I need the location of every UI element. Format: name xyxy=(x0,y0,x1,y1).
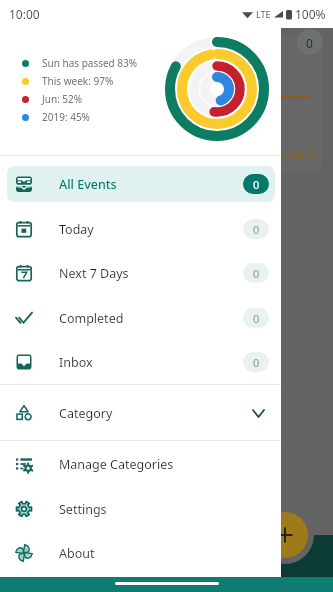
other: About xyxy=(16,545,32,561)
button[interactable]: Manage Categories xyxy=(0,442,281,486)
staticText: Manage Categories xyxy=(59,456,174,473)
other: Next 7 Days xyxy=(16,265,32,281)
other: All Events xyxy=(16,176,32,192)
staticText: 2019: 45% xyxy=(42,110,90,124)
staticText: Category xyxy=(59,405,113,422)
button[interactable]: About xyxy=(0,531,281,575)
staticText: About xyxy=(59,545,95,562)
button[interactable]: Completed xyxy=(7,300,275,336)
staticText: Settings xyxy=(59,501,107,518)
button[interactable]: Inbox xyxy=(7,344,275,380)
staticText: Next 7 Days xyxy=(59,265,129,282)
other: Completed xyxy=(16,310,32,326)
staticText: Completed xyxy=(59,310,124,327)
staticText: 0 xyxy=(306,35,313,51)
staticText: 10:00 xyxy=(9,6,40,22)
staticText: This week: 97% xyxy=(42,74,114,88)
other: Category xyxy=(16,405,32,421)
staticText: 0 xyxy=(253,355,260,370)
other: Settings xyxy=(16,501,32,517)
other: Manage Categories xyxy=(16,456,32,472)
staticText: 100% xyxy=(295,6,326,22)
staticText: Jun: 52% xyxy=(42,92,83,106)
button[interactable]: Today xyxy=(7,211,275,247)
button[interactable]: All Events xyxy=(7,166,275,202)
staticText: LTE xyxy=(256,8,271,20)
other: Inbox xyxy=(16,354,32,370)
staticText: 0 xyxy=(253,177,260,192)
staticText: Today xyxy=(59,221,94,238)
button[interactable]: Category xyxy=(0,391,281,435)
staticText: 0 xyxy=(253,311,260,326)
staticText: EVENTS xyxy=(272,147,316,163)
other: Today xyxy=(16,221,32,237)
staticText: 0 xyxy=(253,222,260,237)
staticText: Sun has passed 83% xyxy=(42,56,138,70)
button[interactable]: Settings xyxy=(0,487,281,531)
staticText: Inbox xyxy=(59,354,93,371)
button[interactable]: Next 7 Days xyxy=(7,255,275,291)
staticText: All Events xyxy=(59,176,117,193)
staticText: 0 xyxy=(253,266,260,281)
